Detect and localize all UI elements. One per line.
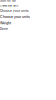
staticText: Done (0, 27, 8, 31)
staticText: Choose your units (0, 15, 30, 19)
staticText: Choose your units (0, 4, 18, 7)
staticText: Weight (0, 21, 11, 25)
staticText: Choose your units (0, 0, 16, 2)
staticText: Choose your units (0, 9, 29, 13)
